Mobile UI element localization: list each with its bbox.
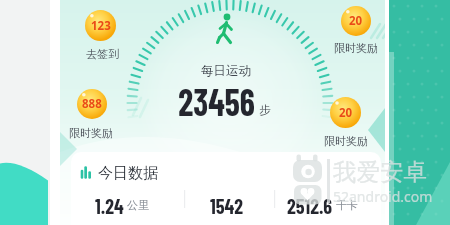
staticText: 今日数据 xyxy=(98,164,158,183)
staticText: 20 xyxy=(349,13,363,29)
staticText: 我爱安卓 xyxy=(333,157,427,187)
staticText: 2512.6 xyxy=(287,194,333,214)
staticText: 去签到 xyxy=(86,47,119,61)
button[interactable]: 今日数据 xyxy=(71,152,381,225)
button[interactable]: 123 xyxy=(85,10,116,41)
staticText: 52android.com xyxy=(333,187,433,206)
staticText: 1.24 xyxy=(95,194,124,214)
staticText: 限时奖励 xyxy=(324,134,368,148)
staticText: 23456 xyxy=(178,78,256,124)
staticText: 20 xyxy=(339,105,353,121)
staticText: 步 xyxy=(259,103,271,117)
staticText: 公里 xyxy=(127,198,149,212)
staticText: 1542 xyxy=(210,194,243,214)
button[interactable]: 20 xyxy=(330,97,361,128)
staticText: 千卡 xyxy=(336,198,358,212)
staticText: 限时奖励 xyxy=(69,126,113,140)
staticText: 888 xyxy=(82,96,102,112)
staticText: 123 xyxy=(91,18,111,34)
staticText: 每日运动 xyxy=(201,63,251,79)
button[interactable]: 20 xyxy=(341,6,371,36)
staticText: 限时奖励 xyxy=(334,41,378,55)
button[interactable]: 888 xyxy=(77,89,107,119)
